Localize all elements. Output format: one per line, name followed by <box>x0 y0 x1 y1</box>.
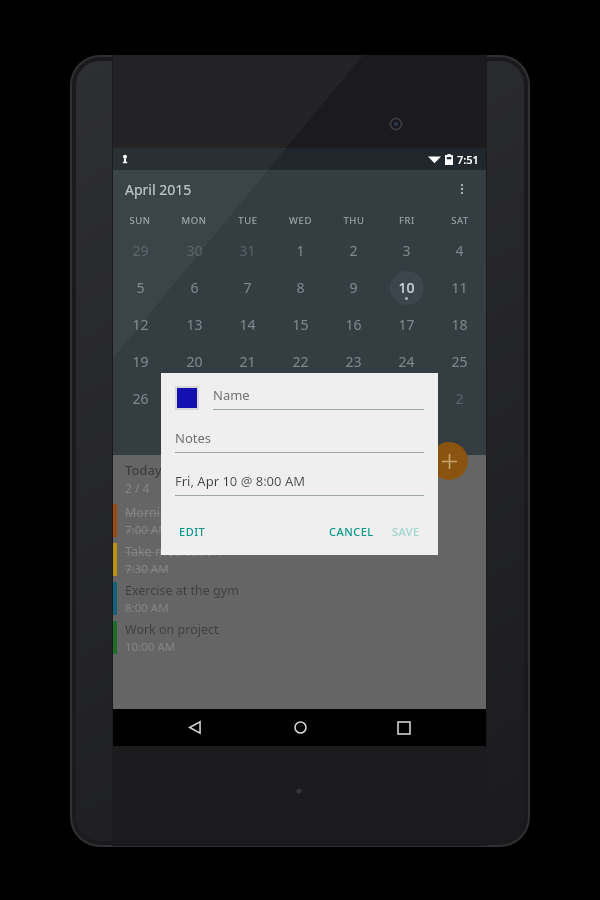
button[interactable]: 18 <box>433 306 486 343</box>
button[interactable]: EDIT <box>171 518 214 545</box>
staticText: 17 <box>398 315 415 334</box>
button[interactable]: 15 <box>274 306 327 343</box>
staticText: 13 <box>186 315 203 334</box>
staticText: 7:51 <box>457 152 479 167</box>
staticText: Notes <box>175 429 211 447</box>
button[interactable]: Morning routine <box>113 501 486 540</box>
button[interactable]: 12 <box>113 306 167 343</box>
button[interactable]: 25 <box>433 343 486 380</box>
staticText: 3 <box>402 241 411 260</box>
button[interactable]: 1 <box>274 232 327 269</box>
button[interactable]: More options <box>448 175 476 203</box>
button[interactable]: 20 <box>167 343 221 380</box>
button[interactable]: 29 <box>274 380 327 417</box>
button[interactable]: Notes <box>175 429 424 453</box>
staticText: 29 <box>132 241 149 260</box>
staticText: 23 <box>345 352 362 371</box>
staticText: 28 <box>239 389 256 408</box>
staticText: 30 <box>186 241 203 260</box>
staticText: 7:30 AM <box>125 561 169 577</box>
staticText: 2 <box>455 389 464 408</box>
button[interactable]: 13 <box>167 306 221 343</box>
staticText: 8 <box>296 278 305 297</box>
button[interactable]: Recent apps <box>382 709 426 746</box>
button[interactable]: 1 <box>380 380 433 417</box>
staticText: Take medication <box>125 543 221 560</box>
staticText: 1 <box>296 241 305 260</box>
button[interactable]: 14 <box>221 306 274 343</box>
button[interactable]: 23 <box>327 343 380 380</box>
staticText: 10 <box>398 278 415 297</box>
button[interactable]: SAVE <box>384 518 428 545</box>
staticText: SUN <box>129 214 151 227</box>
button[interactable]: 28 <box>221 380 274 417</box>
button[interactable]: 26 <box>113 380 167 417</box>
button[interactable]: 21 <box>221 343 274 380</box>
staticText: Work on project <box>125 621 219 638</box>
staticText: 19 <box>132 352 149 371</box>
button[interactable]: 5 <box>113 269 167 306</box>
button[interactable]: 29 <box>113 232 167 269</box>
button[interactable]: 24 <box>380 343 433 380</box>
button[interactable]: 11 <box>433 269 486 306</box>
button[interactable]: Exercise at the gym <box>113 579 486 618</box>
staticText: TUE <box>238 214 258 227</box>
button[interactable]: Add task <box>430 442 468 480</box>
button[interactable]: 7 <box>221 269 274 306</box>
staticText: Today <box>125 461 162 479</box>
staticText: 2 <box>349 241 358 260</box>
staticText: 16 <box>345 315 362 334</box>
staticText: THU <box>343 214 365 227</box>
staticText: 15 <box>292 315 309 334</box>
button[interactable]: 16 <box>327 306 380 343</box>
button[interactable]: 10 <box>380 269 433 306</box>
button[interactable]: Work on project <box>113 618 486 657</box>
button[interactable]: 31 <box>221 232 274 269</box>
button[interactable]: Back <box>173 709 217 746</box>
staticText: 27 <box>186 389 203 408</box>
button[interactable]: 9 <box>327 269 380 306</box>
button[interactable]: Today <box>113 455 486 501</box>
button[interactable]: 27 <box>167 380 221 417</box>
button[interactable]: 30 <box>167 232 221 269</box>
button[interactable]: 8 <box>274 269 327 306</box>
button[interactable]: 6 <box>167 269 221 306</box>
button[interactable]: 17 <box>380 306 433 343</box>
button[interactable]: 4 <box>433 232 486 269</box>
staticText: SAVE <box>392 524 420 539</box>
staticText: 8:00 AM <box>125 600 169 616</box>
button[interactable]: 30 <box>327 380 380 417</box>
staticText: 12 <box>132 315 149 334</box>
button[interactable]: CANCEL <box>321 518 382 545</box>
staticText: 5 <box>136 278 145 297</box>
staticText: 11 <box>451 278 468 297</box>
staticText: FRI <box>399 214 415 227</box>
button[interactable]: Fri, Apr 10 @ 8:00 AM <box>175 472 424 496</box>
staticText: April 2015 <box>125 180 192 199</box>
staticText: Morning routine <box>125 504 222 521</box>
staticText: MON <box>181 214 207 227</box>
staticText: 9 <box>349 278 358 297</box>
button[interactable]: 3 <box>380 232 433 269</box>
staticText: CANCEL <box>329 524 374 539</box>
staticText: 24 <box>398 352 415 371</box>
button[interactable]: 19 <box>113 343 167 380</box>
staticText: 14 <box>239 315 256 334</box>
staticText: 7 <box>243 278 252 297</box>
button[interactable]: Home <box>278 709 322 746</box>
staticText: EDIT <box>179 524 206 539</box>
button[interactable]: 2 <box>327 232 380 269</box>
staticText: 20 <box>186 352 203 371</box>
staticText: WED <box>289 214 312 227</box>
staticText: 21 <box>239 352 256 371</box>
button[interactable]: 22 <box>274 343 327 380</box>
button[interactable]: Take medication <box>113 540 486 579</box>
staticText: Fri, Apr 10 @ 8:00 AM <box>175 472 305 490</box>
staticText: 10:00 AM <box>125 639 176 655</box>
button[interactable]: Name <box>213 386 424 410</box>
button[interactable]: 2 <box>433 380 486 417</box>
